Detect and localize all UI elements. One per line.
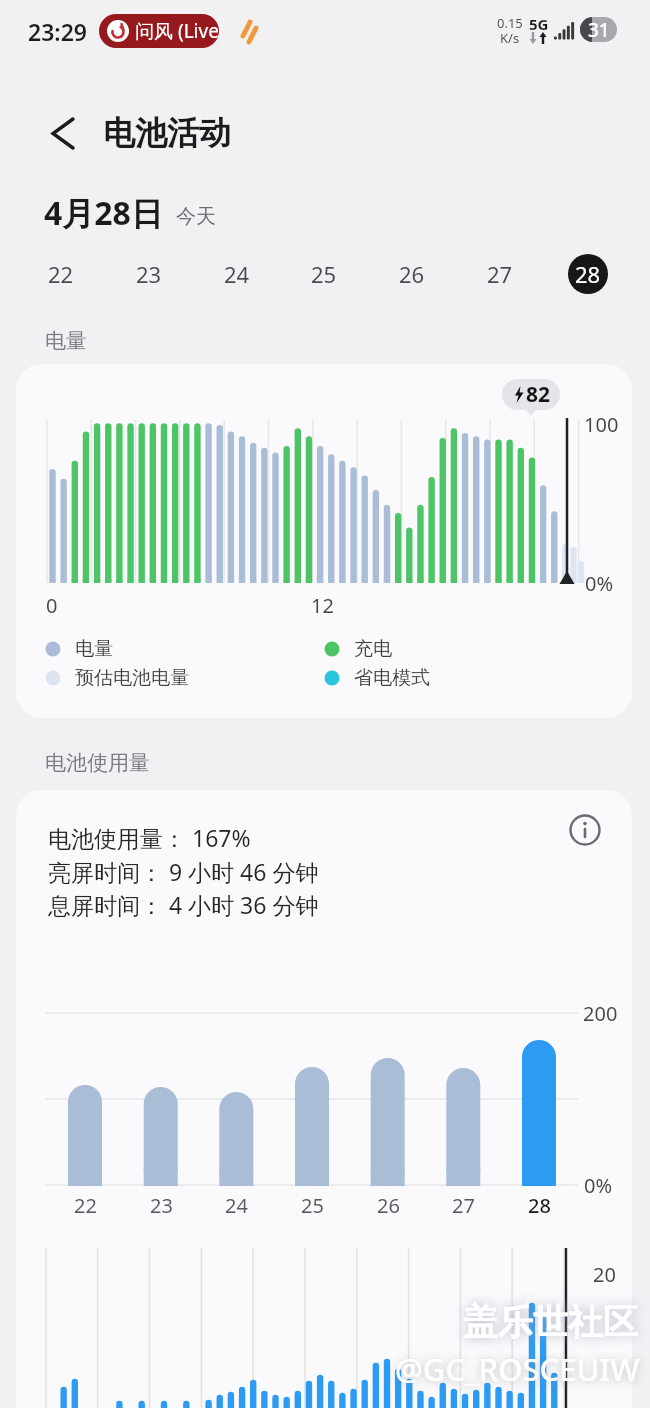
staticText: 电量 bbox=[45, 328, 87, 354]
button[interactable]: 24 bbox=[207, 244, 267, 304]
staticText: 24 bbox=[225, 1192, 248, 1218]
staticText: 盖乐世社区 bbox=[463, 1300, 638, 1344]
staticText: 24 bbox=[224, 259, 250, 289]
staticText: 0% bbox=[585, 570, 614, 596]
button[interactable]: 27 bbox=[470, 244, 530, 304]
staticText: 82 bbox=[526, 380, 551, 409]
staticText: 22 bbox=[74, 1192, 97, 1218]
staticText: 31 bbox=[588, 17, 610, 42]
button[interactable] bbox=[20, 105, 80, 165]
staticText: 省电模式 bbox=[354, 666, 430, 690]
staticText: 亮屏时间： 9 小时 46 分钟 bbox=[48, 856, 319, 887]
staticText: 充电 bbox=[354, 637, 392, 661]
button[interactable] bbox=[560, 805, 610, 855]
staticText: 息屏时间： 4 小时 36 分钟 bbox=[48, 889, 319, 920]
staticText: 0.15 bbox=[497, 14, 523, 32]
staticText: 12 bbox=[311, 592, 334, 618]
button[interactable]: 23 bbox=[119, 244, 179, 304]
staticText: 电池使用量： 167% bbox=[48, 822, 251, 853]
staticText: 200 bbox=[583, 1000, 618, 1026]
staticText: 今天 bbox=[176, 204, 216, 229]
staticText: 电池活动 bbox=[103, 113, 231, 153]
staticText: 25 bbox=[301, 1192, 324, 1218]
button[interactable]: 电池活动 bbox=[103, 113, 231, 153]
staticText: 0% bbox=[584, 1172, 613, 1198]
staticText: 26 bbox=[377, 1192, 400, 1218]
staticText: 5G bbox=[529, 14, 549, 34]
staticText: 电池使用量 bbox=[45, 750, 150, 776]
button[interactable]: 22 bbox=[31, 244, 91, 304]
staticText: 23:29 bbox=[28, 16, 87, 47]
staticText: 27 bbox=[487, 259, 513, 289]
staticText: @GC_ROSCEUIW bbox=[395, 1348, 640, 1390]
staticText: 23 bbox=[150, 1192, 173, 1218]
staticText: 0 bbox=[46, 592, 58, 618]
staticText: 27 bbox=[452, 1192, 475, 1218]
staticText: 22 bbox=[48, 259, 74, 289]
staticText: 25 bbox=[311, 259, 337, 289]
staticText: 100 bbox=[584, 411, 619, 437]
button[interactable]: 28 bbox=[568, 254, 608, 294]
staticText: 28 bbox=[575, 259, 601, 289]
staticText: K/s bbox=[500, 29, 520, 47]
staticText: 问风 (Live bbox=[135, 18, 219, 44]
staticText: 预估电池电量 bbox=[75, 666, 189, 690]
button[interactable]: 问风 (Live bbox=[99, 14, 219, 48]
button[interactable]: 25 bbox=[294, 244, 354, 304]
button[interactable]: 26 bbox=[382, 244, 442, 304]
staticText: 28 bbox=[528, 1192, 551, 1218]
staticText: 电量 bbox=[75, 637, 113, 661]
staticText: 20 bbox=[593, 1261, 616, 1287]
staticText: 4月28日 bbox=[44, 191, 163, 235]
staticText: 23 bbox=[136, 259, 162, 289]
staticText: 26 bbox=[399, 259, 425, 289]
